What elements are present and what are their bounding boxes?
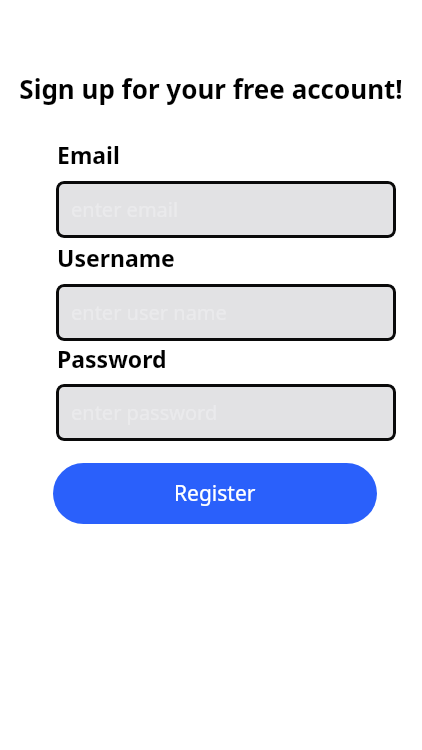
staticText: Register [174, 479, 256, 508]
staticText: Username [57, 242, 175, 273]
staticText: Email [57, 139, 120, 170]
staticText: Sign up for your free account! [0, 71, 422, 106]
staticText: Password [57, 343, 167, 374]
button[interactable]: enter email [56, 181, 396, 238]
button[interactable]: Register [53, 463, 377, 524]
button[interactable]: enter password [56, 384, 396, 441]
button[interactable]: enter user name [56, 284, 396, 341]
